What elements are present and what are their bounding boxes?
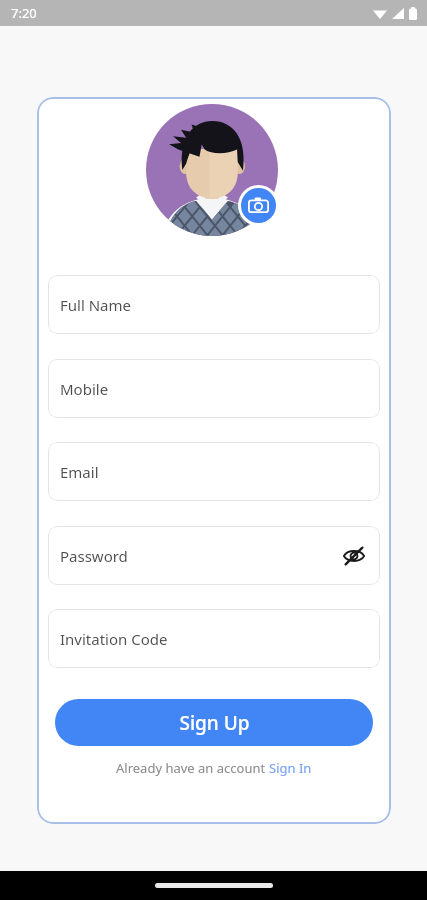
button[interactable]: Invitation Code	[48, 609, 380, 668]
staticText: 7:20	[11, 4, 37, 22]
button[interactable]: Profile photo	[146, 104, 282, 240]
staticText: Invitation Code	[60, 629, 168, 649]
button[interactable]: Email	[48, 442, 380, 501]
staticText: Sign In	[269, 759, 312, 777]
staticText: Password	[60, 546, 128, 566]
staticText: Already have an account	[116, 759, 269, 777]
staticText: Email	[60, 462, 99, 482]
button[interactable]: Change photo	[241, 188, 276, 223]
staticText: Sign Up	[179, 710, 250, 736]
button[interactable]: Show password	[339, 541, 369, 571]
button[interactable]: Mobile	[48, 359, 380, 418]
staticText: Full Name	[60, 295, 131, 315]
staticText: Mobile	[60, 379, 109, 399]
button[interactable]: Password	[48, 526, 380, 585]
button[interactable]: Sign In	[269, 759, 312, 777]
button[interactable]: Sign Up	[55, 699, 373, 746]
button[interactable]: Full Name	[48, 275, 380, 334]
